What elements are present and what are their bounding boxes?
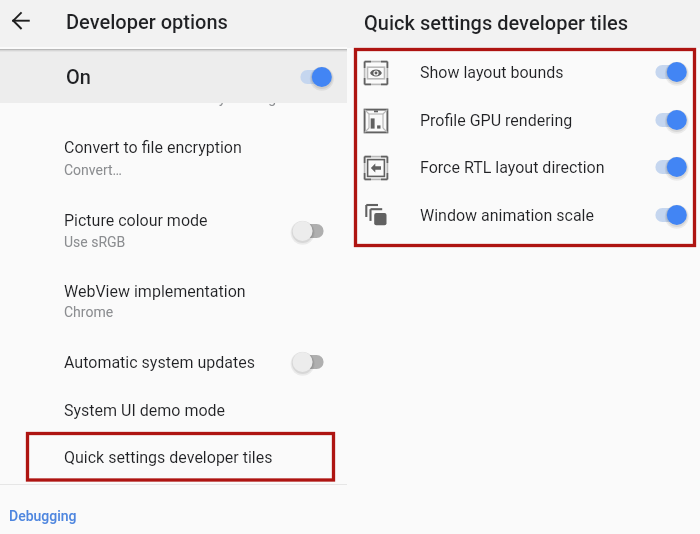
button[interactable]: Switch on <box>347 145 700 193</box>
staticText: Developer options <box>66 10 228 33</box>
button[interactable]: Switch on <box>644 198 690 232</box>
button[interactable]: Switch on <box>644 150 690 184</box>
button[interactable]: Switch off <box>289 345 335 379</box>
button[interactable] <box>0 189 347 260</box>
button[interactable]: On <box>0 48 347 103</box>
staticText: System UI demo mode <box>64 401 226 420</box>
button[interactable]: Switch on <box>347 98 700 146</box>
staticText: Window animation scale <box>420 206 594 225</box>
button[interactable]: Switch off <box>289 214 335 248</box>
staticText: Chrome <box>64 304 114 320</box>
staticText: Automatic system updates <box>64 353 255 372</box>
staticText: Quick settings developer tiles <box>64 448 273 467</box>
button[interactable] <box>0 20 347 132</box>
staticText: Force RTL layout direction <box>420 158 605 177</box>
staticText: Running services <box>64 65 186 84</box>
button[interactable] <box>0 118 347 189</box>
staticText: View and control currently running servi… <box>64 90 332 106</box>
staticText: Show layout bounds <box>420 63 564 82</box>
button[interactable]: Switch on <box>347 50 700 98</box>
staticText: Use sRGB <box>64 234 126 250</box>
button[interactable] <box>0 379 347 427</box>
button[interactable]: Switch on <box>644 55 690 89</box>
button[interactable] <box>0 331 347 379</box>
button[interactable]: Switch on <box>644 103 690 137</box>
button[interactable] <box>0 260 347 331</box>
staticText: Convert… <box>64 162 122 178</box>
staticText: Quick settings developer tiles <box>364 11 629 34</box>
staticText: On <box>66 65 91 88</box>
staticText: Profile GPU rendering <box>420 111 573 130</box>
staticText: Debugging <box>9 508 77 524</box>
staticText: WebView implementation <box>64 282 246 301</box>
staticText: Picture colour mode <box>64 211 208 230</box>
staticText: Convert to file encryption <box>64 138 242 157</box>
button[interactable]: Switch on <box>289 60 335 94</box>
button[interactable] <box>0 427 347 475</box>
button[interactable]: Switch on <box>347 193 700 241</box>
button[interactable]: Navigate up <box>0 2 44 46</box>
